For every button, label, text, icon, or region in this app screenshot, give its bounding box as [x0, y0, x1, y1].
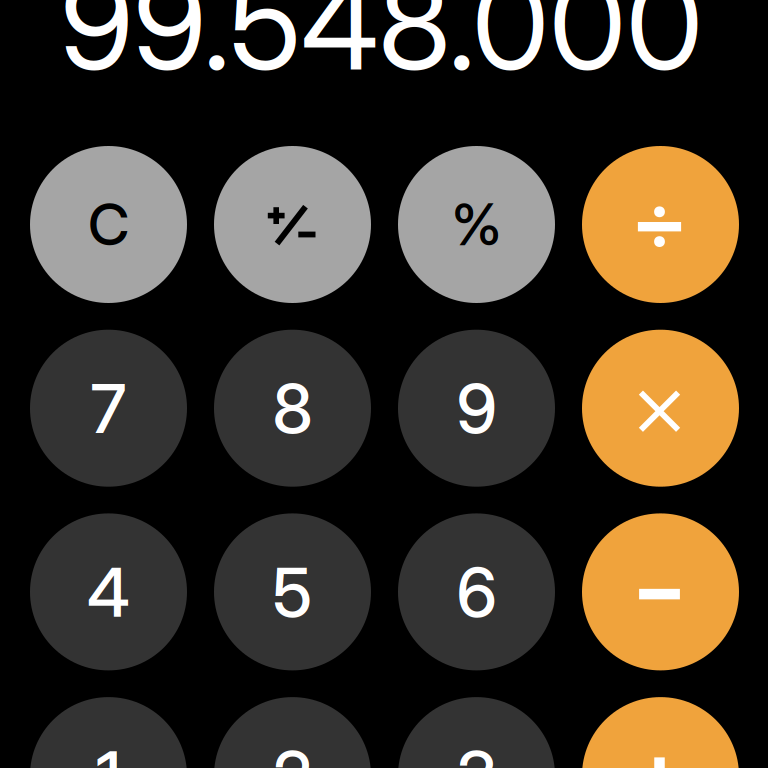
staticText: 9: [456, 367, 496, 449]
staticText: 5: [272, 551, 312, 633]
button[interactable]: %: [398, 146, 555, 303]
button[interactable]: 3: [398, 697, 555, 768]
button[interactable]: Divide: [582, 146, 739, 303]
button[interactable]: Add: [582, 697, 739, 768]
staticText: 8: [272, 367, 312, 449]
button[interactable]: 9: [398, 330, 555, 487]
button[interactable]: 2: [214, 697, 371, 768]
staticText: 2: [273, 734, 312, 768]
button[interactable]: 6: [398, 513, 555, 670]
staticText: 99.548.000: [60, 0, 703, 100]
button[interactable]: C: [30, 146, 187, 303]
button[interactable]: 4: [30, 513, 187, 670]
button[interactable]: 8: [214, 330, 371, 487]
staticText: 3: [456, 734, 497, 768]
button[interactable]: 5: [214, 513, 371, 670]
staticText: 6: [456, 551, 496, 633]
button[interactable]: Subtract: [582, 513, 739, 670]
staticText: 4: [87, 551, 130, 633]
staticText: C: [88, 190, 129, 259]
button[interactable]: Toggle sign: [214, 146, 371, 303]
staticText: 7: [90, 367, 126, 449]
staticText: 1: [96, 734, 121, 768]
button[interactable]: 7: [30, 330, 187, 487]
button[interactable]: Multiply: [582, 330, 739, 487]
button[interactable]: 1: [30, 697, 187, 768]
staticText: %: [451, 190, 501, 259]
